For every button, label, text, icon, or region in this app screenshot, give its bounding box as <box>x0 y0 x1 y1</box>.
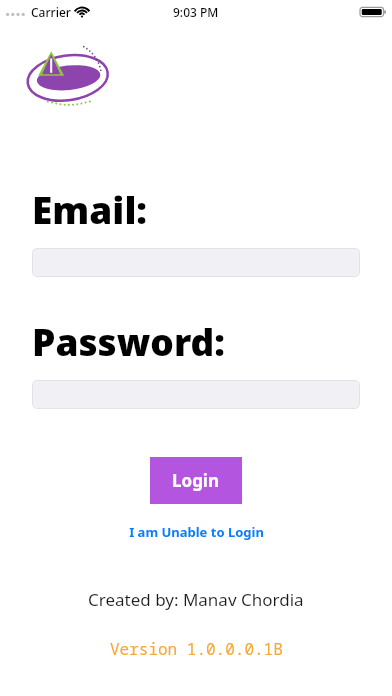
staticText: Version 1.0.0.0.1B <box>110 638 283 660</box>
staticText: I am Unable to Login <box>129 523 264 541</box>
staticText: Login <box>172 469 220 492</box>
button[interactable]: Email input field <box>32 248 360 277</box>
staticText: Email: <box>32 184 148 234</box>
button[interactable]: Password input field <box>32 380 360 409</box>
staticText: Carrier <box>31 4 71 20</box>
staticText: Created by: Manav Chordia <box>88 588 304 611</box>
staticText: Password: <box>32 316 226 366</box>
button[interactable]: I am Unable to Login <box>119 520 274 544</box>
button[interactable]: Login <box>150 457 242 504</box>
staticText: 9:03 PM <box>173 4 219 20</box>
